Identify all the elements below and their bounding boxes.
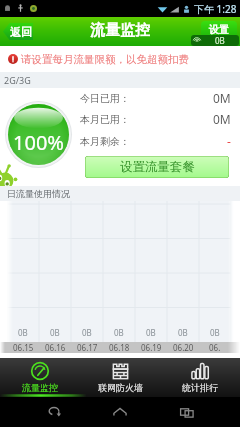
button[interactable]: 设置	[201, 21, 237, 37]
staticText: 06.	[209, 342, 221, 353]
staticText: 统计排行	[182, 382, 218, 393]
button[interactable]: 流量监控	[0, 358, 80, 397]
staticText: 联网防火墙	[98, 382, 143, 393]
staticText: 设置	[209, 23, 229, 36]
staticText: 06.20	[173, 342, 194, 353]
staticText: 0B	[18, 327, 28, 338]
staticText: 0M	[213, 111, 231, 127]
staticText: 日流量使用情况	[7, 188, 70, 199]
button[interactable]: 联网防火墙	[80, 358, 160, 397]
staticText: 0B	[82, 327, 92, 338]
staticText: 本月剩余：	[80, 135, 130, 148]
staticText: 设置流量套餐	[120, 159, 195, 175]
staticText: 0B	[146, 327, 156, 338]
staticText: 流量监控	[22, 382, 58, 393]
staticText: 0B	[178, 327, 188, 338]
staticText: 2G/3G	[4, 74, 31, 86]
staticText: 06.15	[13, 342, 34, 353]
staticText: 请设置每月流量限额，以免超额扣费	[21, 53, 189, 66]
staticText: 下午 1:28	[194, 2, 237, 16]
staticText: 06.16	[45, 342, 66, 353]
button[interactable]: Back	[41, 399, 67, 425]
staticText: 06.19	[141, 342, 162, 353]
button[interactable]: 统计排行	[160, 358, 240, 397]
staticText: 0B	[215, 35, 225, 46]
staticText: 06.17	[77, 342, 98, 353]
staticText: 0B	[114, 327, 124, 338]
button[interactable]: Recent apps	[174, 399, 200, 425]
staticText: 流量监控	[90, 21, 150, 40]
staticText: 06.18	[109, 342, 130, 353]
staticText: 本月已用：	[80, 113, 130, 126]
button[interactable]: 设置流量套餐	[85, 156, 229, 178]
staticText: 返回	[10, 25, 32, 39]
staticText: 今日已用：	[80, 92, 130, 105]
button[interactable]: Home	[107, 399, 133, 425]
button[interactable]: 返回	[3, 23, 33, 40]
staticText: 0M	[213, 90, 231, 106]
staticText: 0B	[50, 327, 60, 338]
staticText: 0B	[210, 327, 220, 338]
staticText: -	[227, 133, 231, 149]
staticText: 100%	[13, 129, 64, 156]
